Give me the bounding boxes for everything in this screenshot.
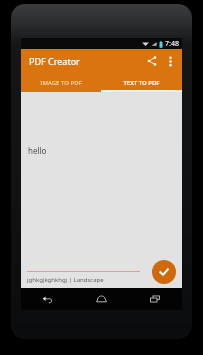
- button[interactable]: Home: [74, 288, 128, 310]
- staticText: 7:48: [165, 39, 179, 49]
- button[interactable]: More options: [162, 53, 178, 69]
- button[interactable]: Back: [21, 288, 74, 310]
- staticText: IMAGE TO PDF: [40, 79, 82, 87]
- button[interactable]: Create PDF: [152, 260, 176, 284]
- button[interactable]: IMAGE TO PDF: [21, 73, 101, 92]
- staticText: jghkgjkghkhgj | Landscape: [27, 276, 104, 284]
- staticText: TEXT TO PDF: [123, 79, 160, 87]
- button[interactable]: Recent apps: [128, 288, 182, 310]
- button[interactable]: TEXT TO PDF: [101, 73, 182, 92]
- staticText: hello: [28, 145, 47, 156]
- staticText: PDF Creator: [29, 55, 80, 67]
- button[interactable]: Share: [142, 51, 162, 71]
